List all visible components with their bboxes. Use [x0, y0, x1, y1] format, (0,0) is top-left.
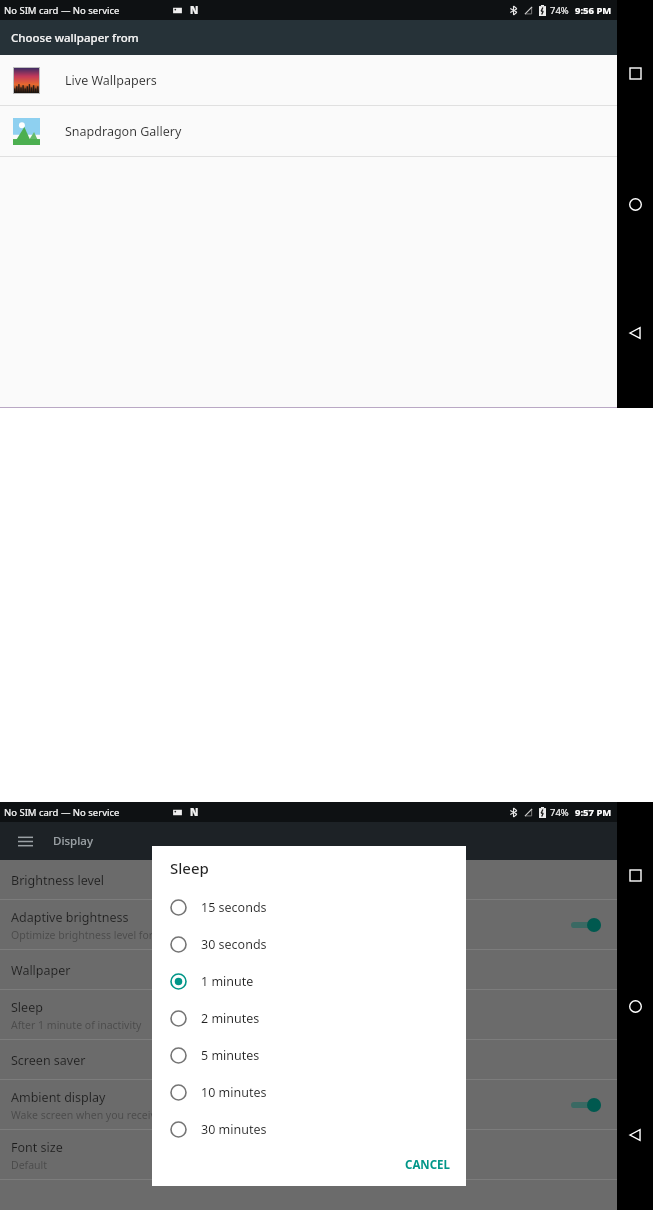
button[interactable]: Back — [620, 1120, 650, 1150]
button[interactable]: Back — [620, 318, 650, 348]
staticText: 74% — [550, 806, 569, 819]
staticText: 1 minute — [201, 973, 254, 990]
staticText: Sleep — [170, 858, 209, 878]
staticText: Ambient display — [11, 1089, 106, 1106]
button[interactable]: Snapdragon Gallery — [0, 106, 617, 156]
staticText: Default — [11, 1158, 48, 1172]
staticText: Display — [53, 833, 93, 849]
staticText: Brightness level — [11, 872, 105, 889]
button[interactable]: Recent apps — [620, 860, 650, 890]
staticText: Wake screen when you receiv — [11, 1108, 156, 1122]
staticText: 5 minutes — [201, 1047, 260, 1064]
staticText: N — [190, 805, 199, 819]
button[interactable]: 1 minute — [152, 963, 466, 1000]
button[interactable]: Recent apps — [620, 58, 650, 88]
button[interactable]: Brightness level — [0, 860, 617, 900]
button[interactable]: Font size — [0, 1130, 617, 1180]
button[interactable]: CANCEL — [389, 1148, 466, 1182]
staticText: N — [190, 3, 199, 17]
button[interactable]: Ambient display — [0, 1080, 617, 1130]
staticText: 74% — [550, 4, 569, 17]
button[interactable]: Home — [620, 991, 650, 1021]
button[interactable]: 2 minutes — [152, 1000, 466, 1037]
staticText: 30 seconds — [201, 936, 267, 953]
button[interactable]: Screen saver — [0, 1040, 617, 1080]
button[interactable]: 5 minutes — [152, 1037, 466, 1074]
staticText: 9:56 PM — [575, 4, 612, 17]
staticText: Font size — [11, 1139, 63, 1156]
staticText: Wallpaper — [11, 962, 71, 979]
button[interactable]: 30 seconds — [152, 926, 466, 963]
staticText: 2 minutes — [201, 1010, 260, 1027]
button[interactable]: Wallpaper — [0, 950, 617, 990]
staticText: Optimize brightness level for — [11, 928, 156, 942]
staticText: 10 minutes — [201, 1084, 267, 1101]
staticText: After 1 minute of inactivity — [11, 1018, 142, 1032]
staticText: Snapdragon Gallery — [65, 123, 182, 140]
button[interactable]: Adaptive brightness — [0, 900, 617, 950]
staticText: Choose wallpaper from — [11, 30, 139, 46]
staticText: Live Wallpapers — [65, 72, 157, 89]
staticText: 9:57 PM — [575, 806, 612, 819]
staticText: Sleep — [11, 999, 43, 1016]
button[interactable]: Sleep — [0, 990, 617, 1040]
button[interactable]: 30 minutes — [152, 1111, 466, 1148]
staticText: CANCEL — [405, 1157, 450, 1173]
staticText: Screen saver — [11, 1052, 86, 1069]
staticText: No SIM card — No service — [4, 4, 120, 17]
button[interactable]: Home — [620, 189, 650, 219]
button[interactable]: 15 seconds — [152, 889, 466, 926]
staticText: 30 minutes — [201, 1121, 267, 1138]
staticText: No SIM card — No service — [4, 806, 120, 819]
staticText: 15 seconds — [201, 899, 267, 916]
button[interactable]: 10 minutes — [152, 1074, 466, 1111]
button[interactable]: Open navigation drawer — [10, 826, 40, 856]
staticText: Adaptive brightness — [11, 909, 129, 926]
button[interactable]: Live Wallpapers — [0, 55, 617, 105]
